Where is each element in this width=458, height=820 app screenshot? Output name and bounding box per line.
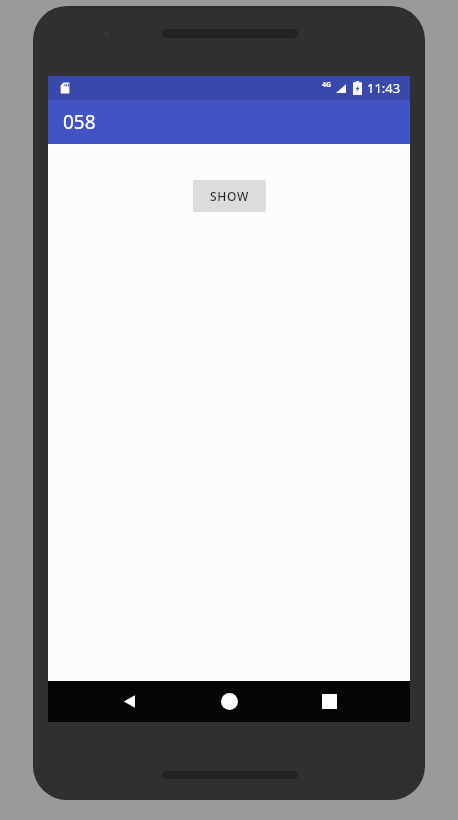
button[interactable]: Recent apps bbox=[308, 681, 350, 722]
button[interactable]: Home bbox=[208, 681, 250, 722]
staticText: 4G bbox=[322, 80, 332, 90]
staticText: 11:43 bbox=[367, 79, 401, 97]
staticText: 058 bbox=[63, 109, 96, 135]
button[interactable]: SHOW bbox=[193, 180, 266, 212]
staticText: SHOW bbox=[210, 188, 249, 204]
button[interactable]: Back bbox=[108, 681, 150, 722]
